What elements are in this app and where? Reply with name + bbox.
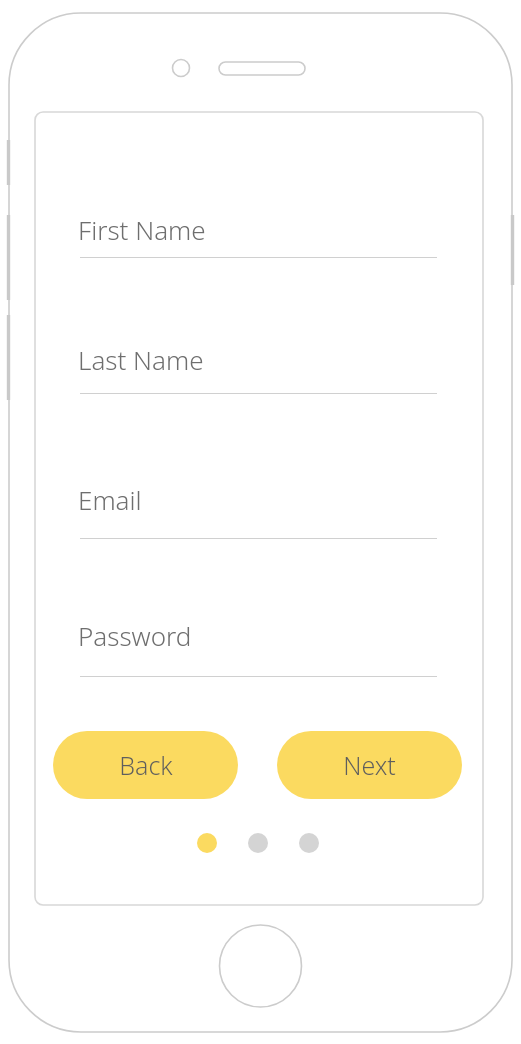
button[interactable] bbox=[248, 833, 268, 853]
staticText: Email bbox=[78, 482, 142, 517]
staticText: First Name bbox=[78, 212, 206, 247]
button[interactable] bbox=[197, 833, 217, 853]
button[interactable] bbox=[80, 336, 437, 394]
staticText: Back bbox=[119, 748, 173, 782]
staticText: Next bbox=[343, 748, 396, 782]
button[interactable] bbox=[80, 612, 437, 677]
button[interactable] bbox=[299, 833, 319, 853]
button[interactable] bbox=[80, 206, 437, 258]
button[interactable]: Next bbox=[277, 731, 462, 799]
staticText: Password bbox=[78, 618, 192, 653]
staticText: Last Name bbox=[78, 342, 204, 377]
button[interactable] bbox=[80, 476, 437, 539]
button[interactable]: Back bbox=[53, 731, 238, 799]
